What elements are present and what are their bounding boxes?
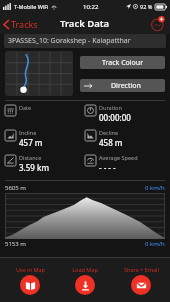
button[interactable]: Average Speed: [85, 154, 165, 173]
button[interactable]: Distance: [5, 154, 85, 173]
staticText: Use in Map: [16, 266, 45, 273]
button[interactable]: Incline: [5, 129, 85, 148]
staticText: - - - -: [99, 162, 116, 173]
staticText: Load Map: [72, 266, 98, 273]
button[interactable]: Track Colour: [80, 56, 165, 69]
button[interactable]: Date: [5, 104, 85, 116]
staticText: 10:22: [83, 3, 99, 11]
staticText: 5153 m: [5, 240, 26, 248]
button[interactable]: 3PASSES_10: Gorakshep - Kalapatthar: [4, 34, 166, 48]
button[interactable]: Tracks: [0, 14, 42, 34]
staticText: Track Data: [60, 17, 110, 30]
staticText: 0 km/h: [145, 240, 165, 248]
staticText: 3PASSES_10: Gorakshep - Kalapatthar: [8, 36, 131, 46]
staticText: 458 m: [99, 137, 123, 148]
staticText: 92 %: [140, 3, 153, 10]
staticText: 457 m: [19, 137, 43, 148]
staticText: Decline: [99, 129, 119, 136]
staticText: 5605 m: [5, 184, 26, 192]
staticText: Share + Email: [124, 266, 159, 273]
staticText: Track Colour: [102, 58, 144, 68]
staticText: 00:00:00: [99, 112, 131, 123]
staticText: Date: [19, 104, 32, 111]
staticText: Average Speed: [99, 154, 138, 161]
button[interactable]: Duration: [85, 104, 165, 123]
staticText: Tracks: [11, 18, 38, 30]
staticText: T-Mobile WiFi: [14, 3, 49, 10]
button[interactable]: Share + Email: [115, 264, 167, 297]
staticText: Duration: [99, 104, 122, 111]
button[interactable]: Elevation profile: [5, 193, 165, 239]
button[interactable]: Load Map: [59, 264, 111, 297]
button[interactable]: Add track: [149, 16, 165, 32]
button[interactable]: Use in Map: [4, 264, 56, 297]
staticText: Distance: [19, 154, 42, 161]
button[interactable]: Decline: [85, 129, 165, 148]
button[interactable]: Direction: [80, 79, 165, 92]
staticText: 3.59 km: [19, 162, 50, 173]
button[interactable]: Map preview: [5, 51, 73, 96]
staticText: 0 km/h: [145, 184, 165, 192]
staticText: Direction: [111, 81, 141, 91]
staticText: Incline: [19, 129, 37, 136]
